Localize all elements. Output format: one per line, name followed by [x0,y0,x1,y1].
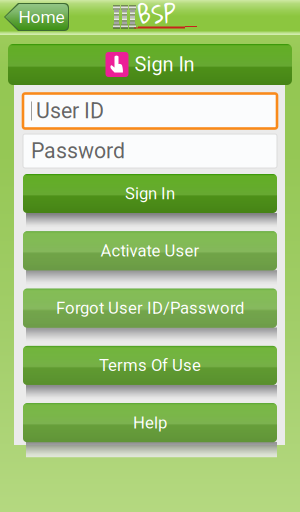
staticText: Forgot User ID/Password [56,298,244,318]
staticText: Terms Of Use [99,356,201,375]
button[interactable]: Terms Of Use [23,346,277,385]
staticText: BSP [137,0,176,38]
button[interactable]: Sign In [23,174,277,213]
staticText: Help [133,413,167,432]
staticText: Password [31,138,125,163]
button[interactable]: User ID [23,93,277,128]
staticText: Home [18,7,64,27]
button[interactable]: Forgot User ID/Password [23,289,277,328]
button[interactable]: Sign In [8,44,292,85]
button[interactable]: Home [4,3,69,31]
button[interactable]: Password [23,134,277,168]
button[interactable]: Activate User [23,231,277,270]
staticText: User ID [36,98,104,123]
staticText: Activate User [100,241,199,260]
button[interactable]: Help [23,403,277,442]
staticText: Sign In [134,53,194,76]
staticText: Sign In [125,184,175,203]
